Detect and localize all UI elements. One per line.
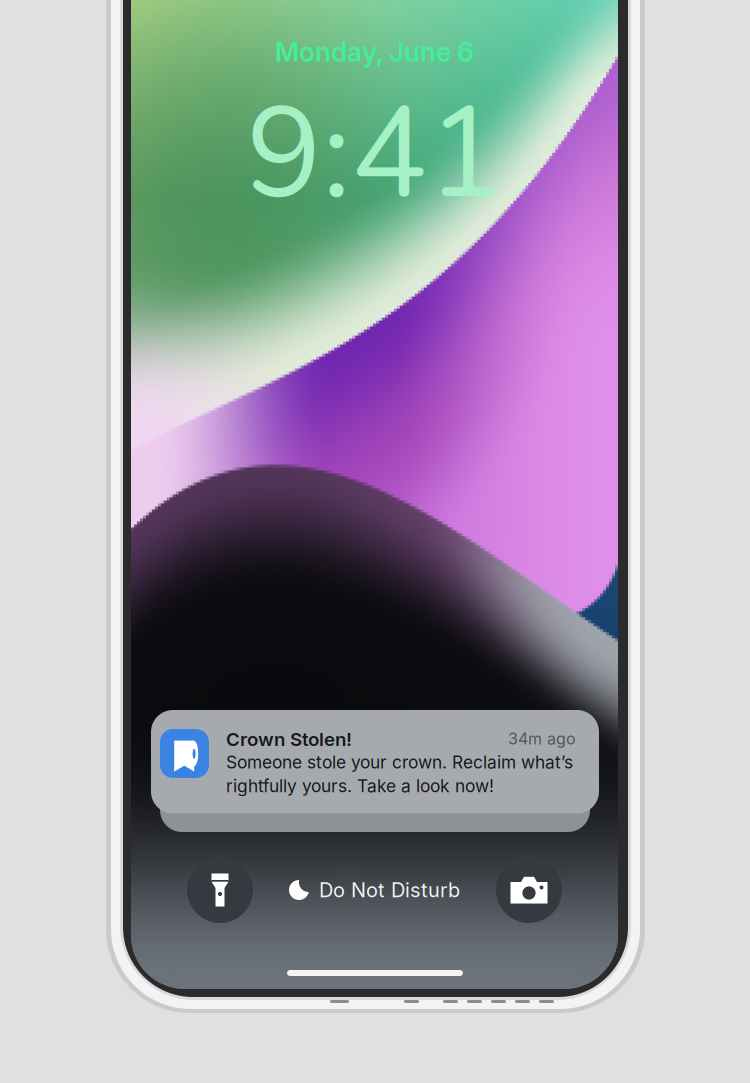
- staticText: 9:41: [246, 68, 503, 241]
- button[interactable]: Camera: [496, 857, 562, 923]
- staticText: Do Not Disturb: [319, 878, 460, 902]
- button[interactable]: Flashlight: [187, 857, 253, 923]
- staticText: Crown Stolen!: [226, 728, 352, 751]
- staticText: Monday, June 6: [275, 36, 474, 68]
- button[interactable]: Crown Stolen!: [151, 710, 599, 813]
- staticText: Someone stole your crown. Reclaim what’s…: [226, 752, 573, 796]
- staticText: 34m ago: [508, 729, 576, 748]
